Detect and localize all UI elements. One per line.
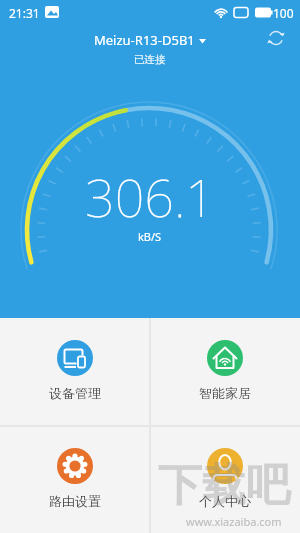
staticText: 306.1 xyxy=(85,161,216,232)
button[interactable]: 智能家居 xyxy=(150,318,300,426)
staticText: 下载吧 xyxy=(158,458,290,513)
staticText: Meizu-R13-D5B1 xyxy=(94,31,195,49)
button[interactable] xyxy=(266,28,286,48)
staticText: 100 xyxy=(273,5,294,21)
button[interactable]: Meizu-R13-D5B1 xyxy=(94,31,206,49)
staticText: 个人中心 xyxy=(199,493,251,509)
button[interactable]: 路由设置 xyxy=(0,426,150,533)
staticText: kB/S xyxy=(138,229,162,244)
button[interactable]: 个人中心 xyxy=(150,426,300,533)
staticText: 已连接 xyxy=(134,53,166,66)
button[interactable]: 设备管理 xyxy=(0,318,150,426)
staticText: 路由设置 xyxy=(49,493,101,509)
staticText: www.xiazaiba.com xyxy=(186,514,282,529)
staticText: 设备管理 xyxy=(49,385,101,401)
staticText: 智能家居 xyxy=(199,385,251,401)
staticText: 21:31 xyxy=(9,5,40,21)
